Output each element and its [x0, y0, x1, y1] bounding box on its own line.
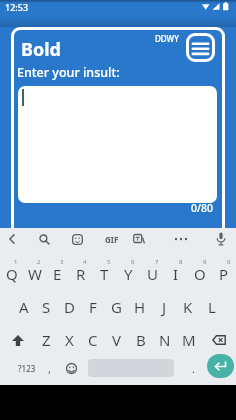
button[interactable]: V	[105, 330, 129, 350]
button[interactable]: O	[188, 264, 212, 284]
button[interactable]: S	[35, 297, 58, 317]
button[interactable]: .	[186, 356, 200, 380]
staticText: 0/80	[191, 201, 214, 215]
staticText: D	[64, 297, 75, 317]
staticText: 6	[131, 258, 135, 266]
button[interactable]: X	[58, 330, 81, 350]
staticText: 0	[227, 258, 231, 266]
staticText: 12:53	[5, 1, 29, 13]
button[interactable]: C	[81, 330, 105, 350]
staticText: U	[147, 264, 158, 284]
button[interactable]: M	[177, 330, 201, 350]
staticText: Q	[6, 264, 18, 284]
staticText: 2	[37, 258, 41, 266]
staticText: F	[89, 297, 97, 317]
button[interactable]: F	[81, 297, 104, 317]
staticText: X	[65, 330, 74, 350]
button[interactable]	[130, 228, 148, 250]
staticText: 8	[179, 258, 183, 266]
button[interactable]: D	[58, 297, 81, 317]
staticText: V	[112, 330, 122, 350]
button[interactable]	[4, 228, 20, 250]
button[interactable]: Q	[0, 264, 23, 284]
button[interactable]: R	[69, 264, 92, 284]
button[interactable]: U	[140, 264, 164, 284]
staticText: 9	[203, 258, 207, 266]
button[interactable]	[18, 86, 217, 203]
button[interactable]	[170, 228, 192, 250]
button[interactable]: A	[12, 297, 35, 317]
button[interactable]	[64, 356, 79, 380]
button[interactable]: B	[129, 330, 153, 350]
button[interactable]: L	[200, 297, 224, 317]
button[interactable]: H	[128, 297, 152, 317]
staticText: Bold	[21, 37, 61, 62]
button[interactable]	[36, 228, 52, 250]
staticText: C	[88, 330, 98, 350]
staticText: M	[182, 330, 196, 350]
staticText: 5	[107, 258, 111, 266]
button[interactable]: J	[152, 297, 176, 317]
staticText: 1	[14, 258, 18, 266]
staticText: ?123	[18, 363, 36, 374]
staticText: J	[162, 297, 167, 317]
staticText: S	[42, 297, 51, 317]
staticText: G	[111, 297, 122, 317]
staticText: DDWY	[155, 33, 179, 44]
staticText: E	[53, 264, 62, 284]
button[interactable]: E	[46, 264, 69, 284]
staticText: O	[194, 264, 206, 284]
staticText: 4	[83, 258, 87, 266]
staticText: Y	[124, 264, 133, 284]
staticText: Enter your insult:	[17, 64, 120, 81]
staticText: .	[192, 361, 195, 376]
staticText: T	[100, 264, 109, 284]
button[interactable]: N	[153, 330, 177, 350]
staticText: P	[219, 264, 229, 284]
staticText: B	[136, 330, 146, 350]
button[interactable]: GIF	[100, 228, 124, 250]
button[interactable]	[207, 354, 234, 378]
staticText: 3	[60, 258, 64, 266]
button[interactable]: K	[176, 297, 200, 317]
staticText: H	[134, 297, 146, 317]
button[interactable]	[201, 330, 236, 350]
staticText: ,	[48, 361, 51, 376]
button[interactable]: Z	[35, 330, 58, 350]
button[interactable]: Y	[116, 264, 140, 284]
staticText: N	[159, 330, 171, 350]
button[interactable]	[0, 330, 35, 350]
button[interactable]: ,	[42, 356, 56, 380]
staticText: L	[208, 297, 216, 317]
button[interactable]: I	[164, 264, 188, 284]
button[interactable]: ?123	[8, 356, 46, 380]
staticText: K	[183, 297, 193, 317]
staticText: 7	[155, 258, 159, 266]
button[interactable]: T	[92, 264, 116, 284]
button[interactable]: G	[104, 297, 128, 317]
button[interactable]	[212, 228, 230, 250]
staticText: I	[173, 264, 179, 284]
button[interactable]	[69, 228, 85, 250]
button[interactable]: W	[23, 264, 46, 284]
staticText: A	[19, 297, 29, 317]
staticText: GIF	[105, 234, 119, 245]
staticText: R	[76, 264, 86, 284]
button[interactable]: P	[212, 264, 236, 284]
button[interactable]	[186, 33, 215, 62]
staticText: W	[28, 264, 42, 284]
staticText: Z	[42, 330, 51, 350]
